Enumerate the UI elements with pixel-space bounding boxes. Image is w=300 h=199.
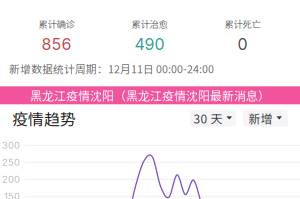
staticText: 新增数据统计周期：12月11日 00:00-24:00 (9, 61, 214, 76)
staticText: 30 天 (193, 110, 222, 127)
staticText: 累计治愈 (131, 17, 167, 30)
staticText: 0 (237, 34, 247, 54)
button[interactable]: 30 天 (190, 110, 236, 127)
button[interactable]: 新增 (243, 110, 288, 127)
staticText: 250 (2, 157, 20, 168)
staticText: 黑龙江疫情沈阳（黑龙江疫情沈阳最新消息） (30, 87, 270, 104)
staticText: 累计确诊 (38, 17, 74, 30)
staticText: 累计死亡 (224, 17, 260, 30)
staticText: 300 (2, 140, 20, 151)
staticText: 856 (41, 34, 71, 54)
staticText: 200 (2, 174, 20, 185)
staticText: 疫情趋势 (12, 107, 76, 130)
button[interactable]: 黑龙江疫情沈阳（黑龙江疫情沈阳最新消息） (0, 86, 300, 104)
staticText: 490 (134, 34, 164, 54)
staticText: 150 (4, 191, 20, 199)
staticText: 新增 (248, 110, 272, 127)
